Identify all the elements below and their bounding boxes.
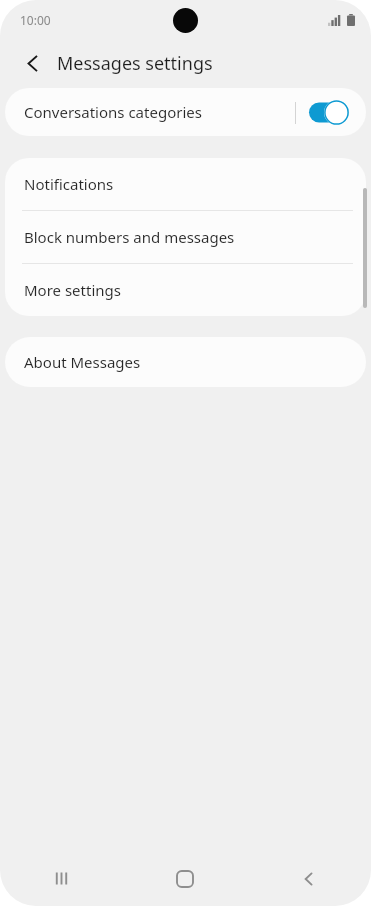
button[interactable]: Back bbox=[247, 851, 371, 906]
button[interactable]: About Messages bbox=[5, 337, 366, 387]
button[interactable]: More settings bbox=[5, 264, 366, 316]
staticText: Block numbers and messages bbox=[24, 227, 235, 247]
button[interactable]: Navigate up bbox=[12, 43, 52, 83]
button[interactable]: Block numbers and messages bbox=[5, 211, 366, 263]
button[interactable]: Conversations categories bbox=[5, 88, 366, 136]
staticText: Notifications bbox=[24, 174, 114, 194]
button[interactable]: Home bbox=[123, 851, 247, 906]
staticText: 10:00 bbox=[20, 12, 51, 28]
staticText: Conversations categories bbox=[24, 102, 202, 122]
staticText: Messages settings bbox=[57, 51, 213, 76]
staticText: More settings bbox=[24, 280, 121, 300]
button[interactable]: Notifications bbox=[5, 158, 366, 210]
button[interactable]: Conversations categories bbox=[309, 100, 349, 125]
button[interactable]: Recent apps bbox=[0, 851, 123, 906]
staticText: About Messages bbox=[24, 352, 141, 372]
